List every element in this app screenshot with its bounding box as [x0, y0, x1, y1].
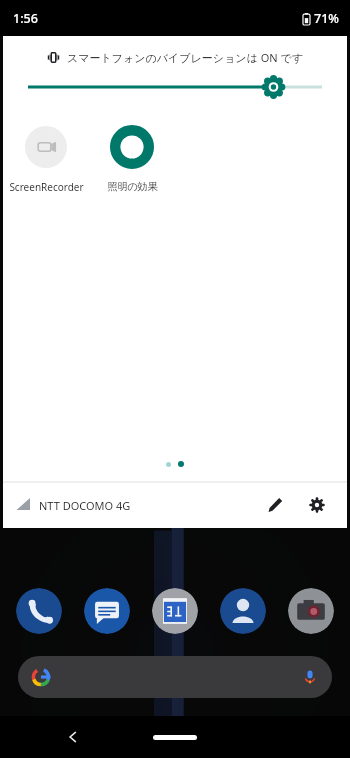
- button[interactable]: Back: [58, 722, 88, 752]
- button[interactable]: Phone: [16, 588, 62, 634]
- button[interactable]: [18, 656, 332, 698]
- button[interactable]: Camera: [288, 588, 334, 634]
- button[interactable]: 照明の効果: [89, 122, 175, 197]
- button[interactable]: Edit: [258, 488, 292, 522]
- staticText: 1:56: [13, 10, 38, 27]
- staticText: スマートフォンのバイブレーションは ON です: [67, 50, 304, 65]
- button[interactable]: [3, 74, 347, 100]
- button[interactable]: Contacts: [220, 588, 266, 634]
- staticText: 71%: [314, 10, 339, 27]
- button[interactable]: Home: [153, 735, 197, 740]
- staticText: ScreenRecorder: [9, 180, 84, 194]
- button[interactable]: Settings: [300, 488, 334, 522]
- staticText: NTT DOCOMO 4G: [39, 498, 131, 513]
- button[interactable]: Calendar: [152, 588, 198, 634]
- button[interactable]: Messages: [84, 588, 130, 634]
- button[interactable]: ScreenRecorder: [3, 122, 89, 198]
- staticText: 照明の効果: [107, 180, 158, 193]
